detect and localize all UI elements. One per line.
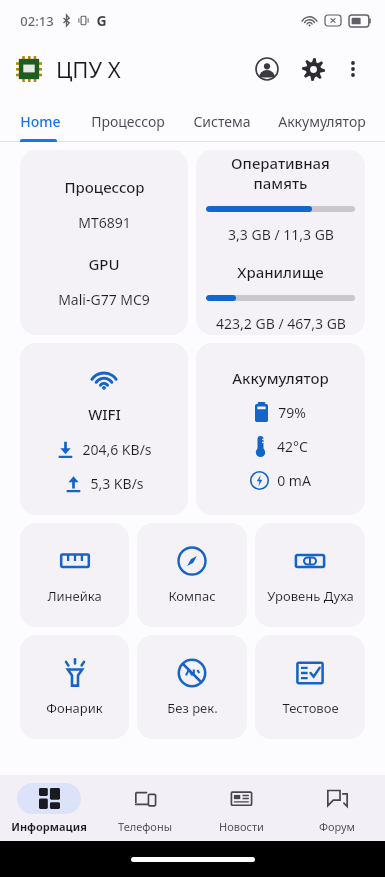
button[interactable]: Информация (0, 775, 97, 841)
staticText: Home (20, 112, 61, 131)
staticText: 02:13 (20, 12, 54, 30)
staticText: 3,3 GB / 11,3 GB (228, 225, 334, 244)
staticText: G (96, 11, 107, 30)
staticText: WIFI (88, 404, 121, 424)
staticText: 79% (278, 403, 306, 422)
button[interactable]: Уровень Духа (255, 523, 365, 627)
staticText: 42°C (277, 437, 308, 456)
button[interactable]: Фонарик (20, 635, 129, 739)
button[interactable]: Account (249, 51, 285, 87)
staticText: MT6891 (78, 213, 131, 232)
staticText: Фонарик (46, 699, 103, 717)
button[interactable]: Процессор (91, 98, 165, 142)
button[interactable]: Линейка (20, 523, 129, 627)
staticText: Новости (219, 819, 264, 834)
staticText: Mali-G77 MC9 (58, 290, 150, 309)
staticText: Аккумулятор (278, 112, 366, 131)
staticText: Система (193, 112, 251, 131)
staticText: Аккумулятор (232, 368, 329, 388)
staticText: ЦПУ Х (56, 54, 121, 84)
staticText: 204,6 KB/s (82, 440, 152, 459)
staticText: 5,3 KB/s (90, 474, 144, 493)
staticText: Форум (319, 819, 355, 834)
button[interactable]: Без рек. (137, 635, 247, 739)
button[interactable]: Процессор (20, 150, 188, 335)
button[interactable]: Settings (295, 51, 331, 87)
button[interactable]: Система (193, 98, 251, 142)
staticText: Процессор (64, 177, 145, 197)
staticText: Информация (11, 819, 87, 834)
button[interactable]: More options (337, 53, 369, 85)
staticText: 0 mA (277, 471, 311, 490)
staticText: Телефоны (118, 819, 172, 834)
staticText: Оперативная память (206, 153, 355, 193)
button[interactable]: Аккумулятор (196, 343, 365, 515)
staticText: 423,2 GB / 467,3 GB (216, 314, 346, 333)
button[interactable]: Компас (137, 523, 247, 627)
button[interactable]: Форум (289, 775, 385, 841)
button[interactable]: Аккумулятор (278, 98, 366, 142)
staticText: GPU (88, 254, 120, 274)
staticText: Хранилище (237, 262, 324, 282)
button[interactable]: Новости (193, 775, 289, 841)
staticText: Линейка (47, 587, 102, 605)
button[interactable]: Телефоны (97, 775, 193, 841)
button[interactable]: Оперативная память (196, 150, 365, 335)
staticText: Тестовое (282, 699, 339, 717)
button[interactable]: Home (20, 98, 61, 142)
button[interactable]: WIFI (20, 343, 188, 515)
staticText: Процессор (91, 112, 165, 131)
staticText: Без рек. (167, 699, 218, 717)
button[interactable]: Тестовое (255, 635, 365, 739)
staticText: Компас (168, 587, 216, 605)
staticText: Уровень Духа (267, 587, 354, 605)
